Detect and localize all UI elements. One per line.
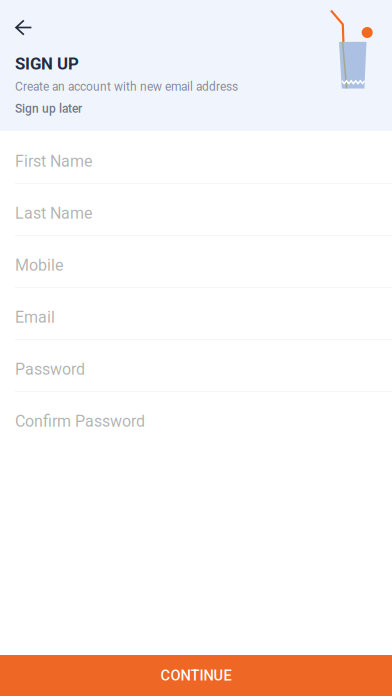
staticText: Email [15, 308, 55, 327]
button[interactable]: First Name [0, 132, 392, 184]
button[interactable]: Confirm Password [0, 392, 392, 444]
staticText: Password [15, 360, 85, 379]
staticText: Sign up later [15, 102, 82, 116]
button[interactable]: CONTINUE [0, 655, 392, 696]
button[interactable]: Email [0, 288, 392, 340]
staticText: First Name [15, 152, 92, 171]
button[interactable]: Sign up later [15, 102, 82, 116]
staticText: Mobile [15, 256, 63, 275]
button[interactable]: Last Name [0, 184, 392, 236]
staticText: SIGN UP [15, 54, 79, 74]
button[interactable]: Back [12, 11, 52, 45]
button[interactable]: Mobile [0, 236, 392, 288]
staticText: CONTINUE [160, 667, 231, 684]
staticText: Confirm Password [15, 412, 145, 431]
button[interactable]: Password [0, 340, 392, 392]
staticText: Create an account with new email address [15, 80, 238, 94]
staticText: Last Name [15, 204, 92, 223]
